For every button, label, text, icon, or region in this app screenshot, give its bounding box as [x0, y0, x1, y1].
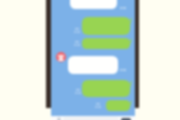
button[interactable] [70, 0, 117, 9]
button[interactable] [82, 38, 132, 49]
button[interactable]: Add attachment [57, 117, 61, 120]
button[interactable] [82, 80, 132, 97]
button[interactable] [68, 56, 118, 74]
button[interactable]: Profile picture [56, 52, 66, 62]
button[interactable] [82, 17, 132, 35]
button[interactable]: Message input [63, 117, 119, 120]
button[interactable]: Send [121, 118, 131, 120]
button[interactable] [106, 100, 132, 111]
